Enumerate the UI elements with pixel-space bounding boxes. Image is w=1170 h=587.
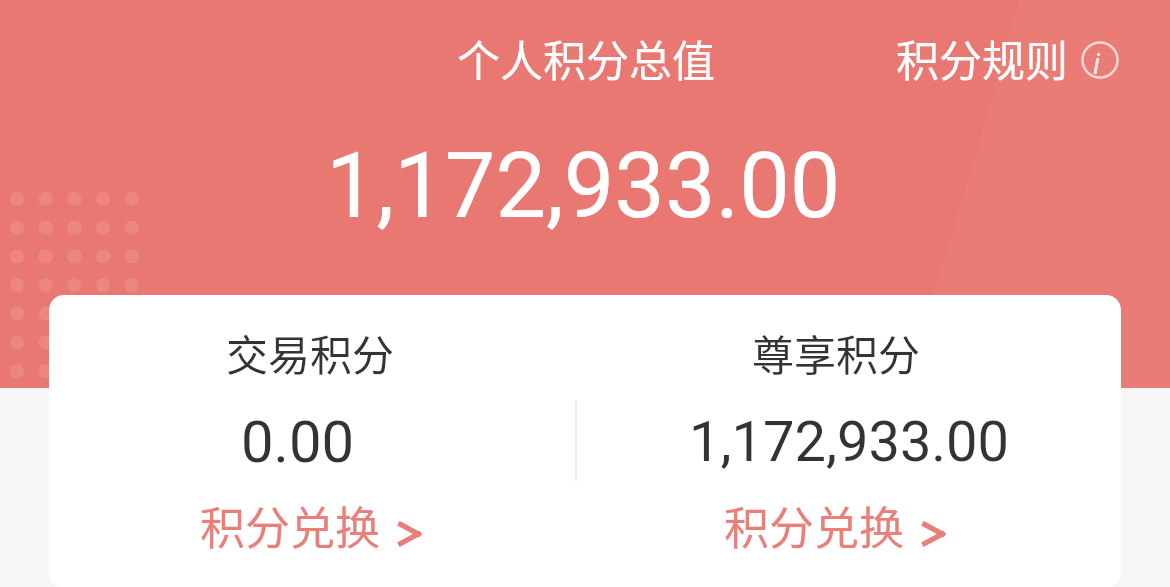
staticText: 积分规则	[896, 27, 1068, 89]
other: 积分规则 Points rules info	[1078, 38, 1122, 82]
staticText: 1,172,933.00	[326, 134, 841, 239]
staticText: 1,172,933.00	[689, 409, 1010, 475]
staticText: i	[1093, 46, 1101, 81]
staticText: 积分兑换	[724, 493, 905, 558]
staticText: 个人积分总值	[457, 27, 715, 89]
staticText: 0.00	[241, 408, 355, 476]
staticText: 尊享积分	[752, 322, 921, 383]
staticText: 积分兑换	[200, 493, 381, 558]
staticText: 交易积分	[226, 322, 395, 383]
button[interactable]: 积分兑换	[200, 491, 421, 559]
button[interactable]: 积分规则	[880, 12, 1136, 104]
button[interactable]: 积分兑换	[724, 491, 945, 559]
